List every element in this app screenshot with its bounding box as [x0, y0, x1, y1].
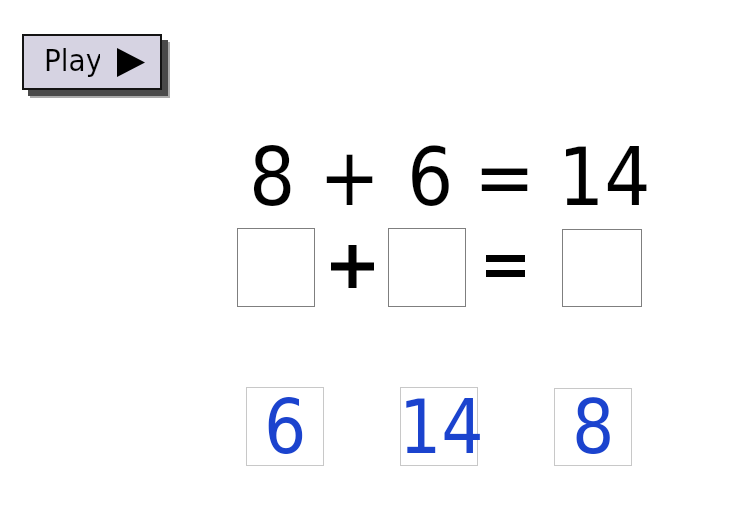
staticText: 14 [558, 130, 651, 224]
staticText: 6 [407, 130, 454, 224]
button[interactable] [237, 228, 315, 307]
button[interactable] [400, 387, 478, 466]
staticText: 8 [572, 384, 615, 470]
button[interactable] [562, 229, 642, 307]
staticText: + [319, 130, 381, 224]
button[interactable]: Play [22, 34, 162, 90]
staticText: 6 [264, 384, 307, 470]
staticText: = [474, 130, 536, 224]
button[interactable] [554, 388, 632, 466]
staticText: 8 [249, 130, 296, 224]
staticText: Play [44, 42, 100, 78]
button[interactable] [388, 228, 466, 307]
staticText: 14 [399, 384, 484, 470]
button[interactable] [246, 387, 324, 466]
